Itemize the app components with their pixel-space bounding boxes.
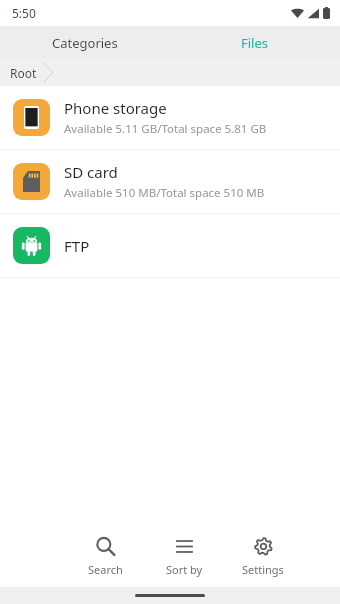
- button[interactable]: Settings: [234, 532, 292, 581]
- button[interactable]: Sort by: [155, 532, 213, 581]
- other: Sort by: [174, 536, 195, 557]
- button[interactable]: Root: [0, 59, 340, 86]
- staticText: Files: [241, 34, 269, 52]
- button[interactable]: FTP: [0, 214, 340, 277]
- staticText: Phone storage: [64, 98, 167, 118]
- staticText: Root: [10, 65, 37, 81]
- staticText: Available 510 MB/Total space 510 MB: [64, 185, 265, 201]
- button[interactable]: Search: [76, 532, 134, 581]
- staticText: FTP: [64, 236, 90, 256]
- staticText: Search: [88, 562, 123, 577]
- staticText: Available 5.11 GB/Total space 5.81 GB: [64, 121, 267, 137]
- button[interactable]: Categories: [0, 26, 170, 59]
- button[interactable]: Phone storage: [0, 86, 340, 149]
- staticText: Sort by: [166, 562, 203, 577]
- button[interactable]: SD card: [0, 150, 340, 213]
- button[interactable]: Files: [170, 26, 340, 59]
- other: Search: [95, 536, 116, 557]
- staticText: Settings: [242, 562, 284, 577]
- other: Settings: [253, 536, 274, 557]
- staticText: 5:50: [12, 5, 36, 21]
- staticText: SD card: [64, 162, 118, 182]
- staticText: Categories: [52, 34, 118, 52]
